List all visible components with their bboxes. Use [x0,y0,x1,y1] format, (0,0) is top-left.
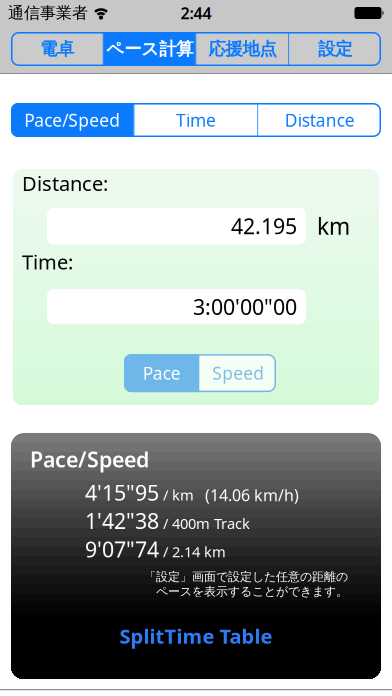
staticText: km [317,211,350,241]
staticText: SplitTime Table [119,623,272,649]
staticText: 3:00'00"00 [193,292,297,321]
button[interactable]: Time [135,103,257,137]
staticText: Time [176,108,216,131]
button[interactable]: SplitTime Table [119,623,272,649]
staticText: / km [159,485,194,505]
button[interactable]: 42.195 [47,208,306,245]
staticText: / 2.14 km [159,542,226,561]
staticText: 2:44 [180,2,211,24]
staticText: Distance [285,108,355,131]
button[interactable]: 応援地点 [196,32,288,66]
staticText: Time: [22,249,73,275]
staticText: 9'07"74 [85,535,159,563]
staticText: 電卓 [40,38,74,60]
button[interactable]: Pace/Speed [11,103,134,137]
staticText: Pace/Speed [30,445,149,473]
button[interactable]: Pace [124,354,199,392]
staticText: / 400m Track [159,513,250,533]
staticText: 4'15"95 [85,478,159,507]
button[interactable]: 3:00'00"00 [47,289,306,324]
staticText: (14.06 km/h) [205,484,299,506]
button[interactable]: ペース計算 [104,32,196,66]
button[interactable]: 電卓 [11,32,103,66]
staticText: 設定 [318,38,352,60]
staticText: ペース計算 [106,38,193,60]
button[interactable]: Distance [258,103,381,137]
staticText: 応援地点 [208,38,276,60]
staticText: Pace/Speed [24,108,120,131]
button[interactable]: 設定 [289,32,381,66]
staticText: 1'42"38 [85,507,159,535]
staticText: Distance: [22,170,108,197]
staticText: 「設定」画面で設定した任意の距離の [144,569,348,584]
staticText: Pace [143,362,181,385]
staticText: ペースを表示することができます。 [156,584,348,599]
staticText: 通信事業者 [8,3,88,23]
staticText: Speed [212,362,264,385]
staticText: 42.195 [231,212,297,240]
button[interactable]: Speed [200,354,276,392]
